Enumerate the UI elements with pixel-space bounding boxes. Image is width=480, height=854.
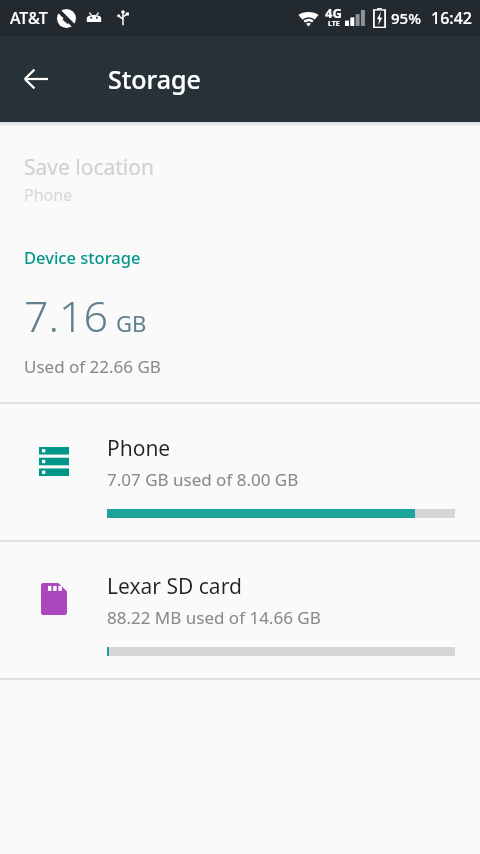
staticText: 7.16 (24, 286, 109, 345)
button[interactable]: Back (12, 55, 60, 103)
staticText: Lexar SD card (107, 572, 242, 601)
staticText: Phone (107, 434, 171, 463)
staticText: GB (116, 308, 147, 338)
staticText: 7.07 GB used of 8.00 GB (107, 468, 299, 491)
other: Phone storage (0, 447, 107, 476)
staticText: Storage (108, 62, 201, 96)
button[interactable]: SD card storage (0, 542, 480, 678)
staticText: AT&T (10, 7, 48, 29)
staticText: 4G (325, 4, 342, 22)
button[interactable]: Save location (0, 145, 480, 214)
button[interactable]: Phone storage (0, 404, 480, 540)
staticText: Phone (24, 184, 73, 206)
staticText: Used of 22.66 GB (24, 355, 161, 378)
staticText: LTE (328, 19, 340, 29)
staticText: Device storage (24, 246, 141, 268)
other: SD card storage (0, 583, 107, 615)
staticText: 16:42 (431, 7, 472, 29)
staticText: Save location (24, 153, 154, 182)
staticText: 95% (391, 8, 421, 28)
staticText: 88.22 MB used of 14.66 GB (107, 606, 321, 629)
